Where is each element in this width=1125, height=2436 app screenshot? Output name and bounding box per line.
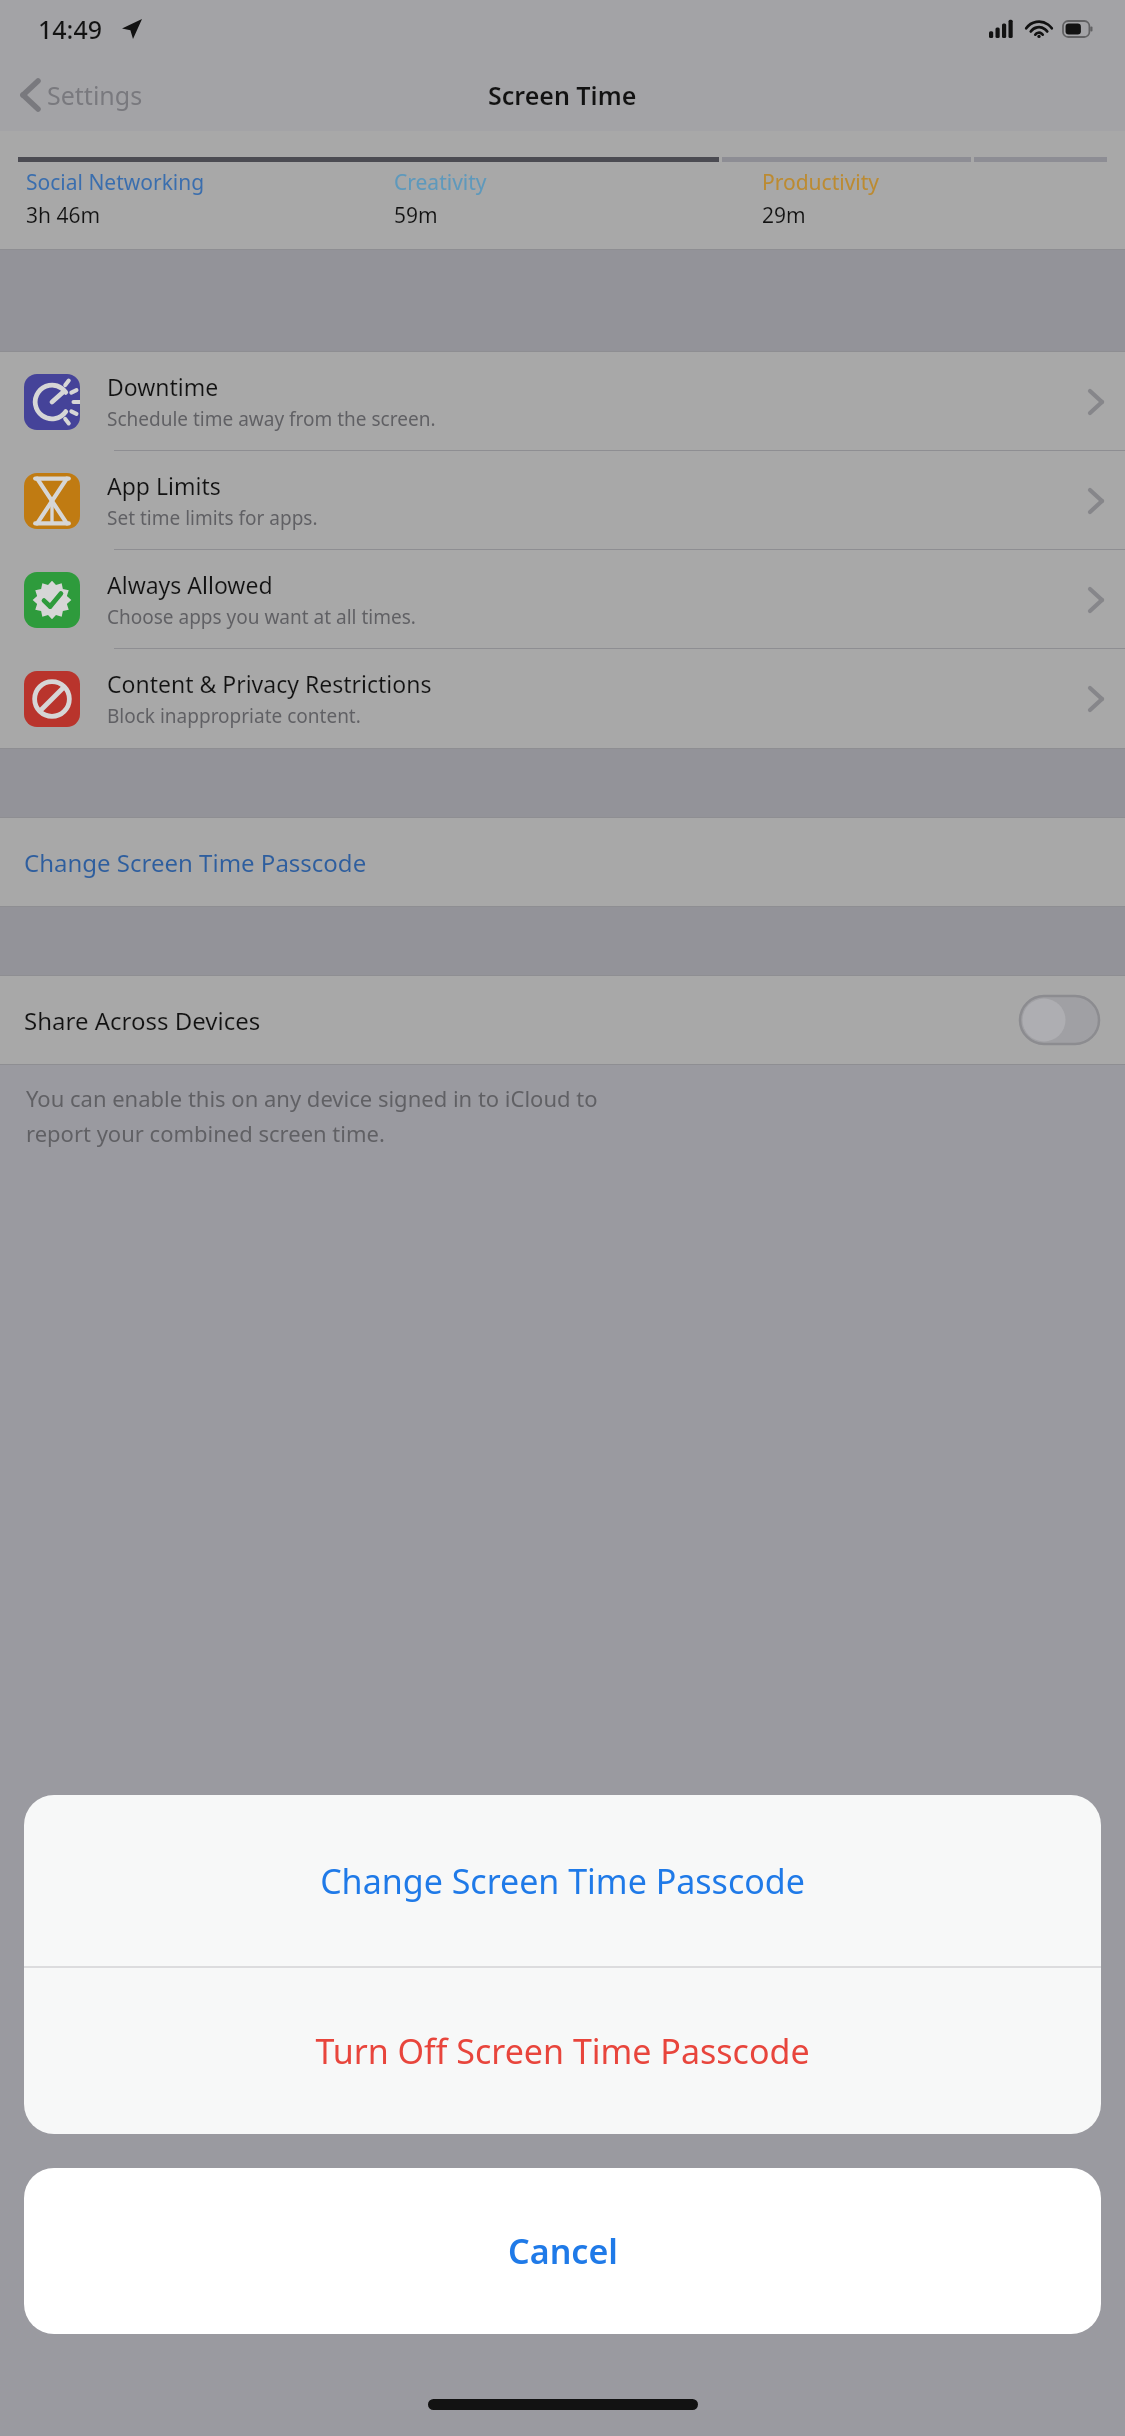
staticText: Turn Off Screen Time Passcode (315, 2028, 810, 2074)
other: Home indicator (428, 2399, 698, 2410)
staticText: Choose apps you want at all times. (107, 604, 416, 630)
staticText: Always Allowed (107, 569, 273, 600)
staticText: Change Screen Time Passcode (320, 1858, 805, 1904)
staticText: Creativity (394, 168, 487, 197)
staticText: Change Screen Time Passcode (24, 846, 367, 879)
button[interactable]: Turn Off Screen Time Passcode (24, 1968, 1101, 2134)
staticText: You can enable this on any device signed… (26, 1083, 598, 1113)
staticText: report your combined screen time. (26, 1118, 385, 1148)
staticText: Block inappropriate content. (107, 703, 361, 729)
button[interactable]: Always Allowed (0, 550, 1125, 649)
staticText: 29m (762, 201, 806, 230)
staticText: Share Across Devices (24, 1004, 261, 1037)
staticText: 3h 46m (26, 201, 101, 230)
staticText: Downtime (107, 371, 219, 402)
button[interactable]: App Limits (0, 451, 1125, 550)
staticText: Set time limits for apps. (107, 505, 318, 531)
staticText: Content & Privacy Restrictions (107, 668, 432, 699)
staticText: Schedule time away from the screen. (107, 406, 436, 432)
button[interactable]: Share Across Devices (0, 976, 1125, 1064)
staticText: Settings (47, 78, 143, 112)
button[interactable]: Change Screen Time Passcode (0, 818, 1125, 906)
staticText: 59m (394, 201, 438, 230)
staticText: Turn Off Screen Time (414, 2098, 711, 2139)
staticText: Social Networking (26, 168, 205, 197)
staticText: App Limits (107, 470, 221, 501)
staticText: Screen Time (488, 78, 637, 112)
button[interactable]: Cancel (24, 2168, 1101, 2334)
staticText: 14:49 (38, 12, 103, 46)
button[interactable]: Settings (18, 72, 147, 118)
button[interactable]: Content & Privacy Restrictions (0, 649, 1125, 748)
staticText: Productivity (762, 168, 880, 197)
button[interactable]: Downtime (0, 352, 1125, 451)
staticText: Cancel (508, 2228, 618, 2274)
button[interactable]: Change Screen Time Passcode (24, 1795, 1101, 1966)
